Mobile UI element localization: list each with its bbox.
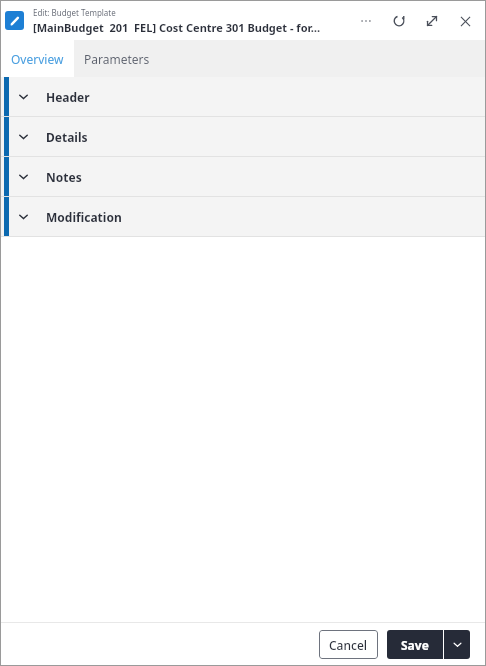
button[interactable]: Details	[1, 117, 485, 156]
staticText: Header	[46, 89, 90, 105]
button[interactable]: Refresh	[386, 8, 412, 34]
button[interactable]: Save	[387, 630, 443, 659]
button[interactable]: Modification	[1, 197, 485, 236]
button[interactable]: Close	[452, 8, 478, 34]
staticText: Details	[46, 129, 88, 145]
button[interactable]: Save options	[444, 630, 470, 659]
staticText: Save	[401, 637, 429, 653]
button[interactable]: More options	[353, 8, 379, 34]
staticText: Modification	[46, 209, 122, 225]
staticText: Notes	[46, 169, 82, 185]
button[interactable]: Expand	[419, 8, 445, 34]
button[interactable]: Header	[1, 77, 485, 116]
staticText: Cancel	[329, 637, 368, 653]
staticText: Edit: Budget Template	[33, 7, 116, 18]
staticText: Parameters	[84, 51, 150, 67]
button[interactable]: Parameters	[74, 40, 160, 77]
staticText: Overview	[11, 51, 64, 67]
button[interactable]: Notes	[1, 157, 485, 196]
button[interactable]: Cancel	[319, 630, 378, 659]
staticText: [MainBudget 201 FEL] Cost Centre 301 Bud…	[33, 20, 321, 35]
button[interactable]: Edit	[5, 11, 24, 30]
button[interactable]: Overview	[1, 40, 74, 77]
